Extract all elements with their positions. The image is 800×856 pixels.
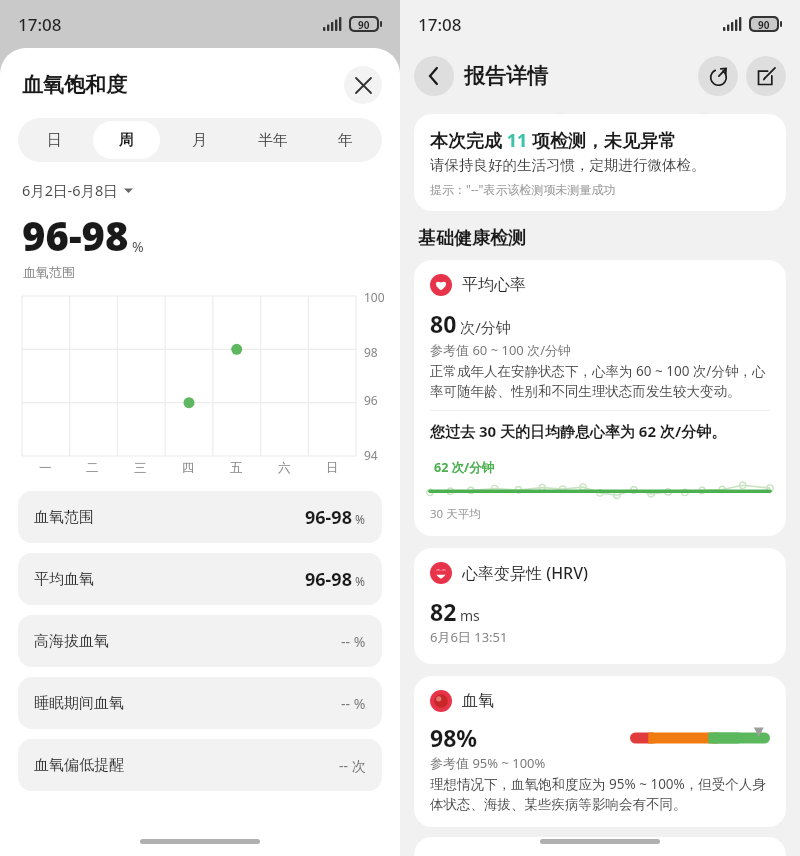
button[interactable]: 血氧偏低提醒 [18, 739, 382, 791]
button[interactable]: 血氧范围 [18, 491, 382, 543]
staticText: 五 [230, 460, 243, 476]
button[interactable]: 平均心率 [414, 260, 786, 536]
staticText: 98% [430, 722, 478, 753]
staticText: 周 [119, 131, 134, 150]
button[interactable]: 分享 [698, 56, 738, 96]
staticText: 90 [758, 18, 770, 30]
button[interactable]: 日 [21, 121, 87, 159]
staticText: 高海拔血氧 [34, 632, 109, 651]
staticText: 98 [364, 344, 378, 360]
staticText: 睡眠期间血氧 [34, 694, 124, 713]
staticText: 96-98 % [305, 567, 366, 592]
staticText: 80 次/分钟 [430, 308, 511, 339]
staticText: 理想情况下，血氧饱和度应为 95% ~ 100%，但受个人身体状态、海拔、某些疾… [430, 775, 770, 813]
staticText: 6月6日 13:51 [430, 628, 508, 646]
staticText: 90 [358, 18, 370, 30]
button[interactable]: 6月2日-6月8日 [22, 180, 133, 200]
button[interactable]: 周 [93, 121, 160, 159]
staticText: -- % [341, 632, 366, 651]
staticText: 三 [134, 460, 147, 476]
staticText: -- 次 [339, 756, 366, 775]
staticText: 血氧饱和度 [22, 72, 127, 98]
staticText: 您过去 30 天的日均静息心率为 62 次/分钟。 [430, 421, 727, 441]
staticText: 17:08 [418, 13, 462, 36]
staticText: 血氧范围 [23, 264, 75, 280]
staticText: 二 [86, 460, 99, 476]
button[interactable]: 返回 [414, 56, 454, 96]
button[interactable]: 年 [312, 121, 379, 159]
button[interactable]: 编辑 [746, 56, 786, 96]
staticText: 平均血氧 [34, 570, 94, 589]
staticText: 正常成年人在安静状态下，心率为 60 ~ 100 次/分钟，心率可随年龄、性别和… [430, 362, 770, 400]
staticText: 年 [338, 131, 353, 150]
staticText: 六 [278, 460, 291, 476]
staticText: 血氧范围 [34, 508, 94, 527]
button[interactable]: 心率变异性 (HRV) [414, 548, 786, 664]
staticText: 基础健康检测 [418, 227, 526, 250]
staticText: 100 [364, 289, 385, 305]
button[interactable]: 血氧 [414, 676, 786, 827]
staticText: 日 [326, 460, 339, 476]
staticText: 94 [364, 447, 378, 463]
staticText: 提示："--"表示该检测项未测量成功 [430, 181, 616, 197]
staticText: 一 [39, 460, 52, 476]
staticText: 半年 [258, 131, 288, 150]
staticText: 报告详情 [464, 63, 548, 89]
staticText: -- % [341, 694, 366, 713]
staticText: 请保持良好的生活习惯，定期进行微体检。 [430, 156, 706, 174]
staticText: 96 [364, 392, 378, 408]
staticText: 心率变异性 (HRV) [462, 562, 589, 584]
staticText: 日 [47, 131, 62, 150]
staticText: 平均心率 [462, 275, 526, 295]
staticText: 四 [182, 460, 195, 476]
button[interactable]: 高海拔血氧 [18, 615, 382, 667]
staticText: 参考值 60 ~ 100 次/分钟 [430, 341, 571, 359]
staticText: 参考值 95% ~ 100% [430, 754, 546, 772]
button[interactable]: 睡眠期间血氧 [18, 677, 382, 729]
staticText: 本次完成 11 项检测，未见异常 [430, 128, 676, 153]
staticText: 血氧偏低提醒 [34, 756, 124, 775]
button[interactable]: 平均血氧 [18, 553, 382, 605]
button[interactable]: 本次完成 11 项检测，未见异常 [414, 114, 786, 211]
staticText: 96-98 % [305, 505, 366, 530]
staticText: 6月2日-6月8日 [22, 180, 118, 200]
staticText: 30 天平均 [430, 506, 481, 522]
staticText: 血氧 [462, 691, 494, 711]
staticText: 月 [192, 131, 207, 150]
staticText: 82 ms [430, 596, 480, 627]
button[interactable]: 月 [166, 121, 233, 159]
staticText: 96-98 [22, 208, 129, 262]
button[interactable]: 关闭 [344, 66, 382, 104]
staticText: 17:08 [18, 13, 62, 36]
staticText: % [132, 237, 144, 256]
staticText: 62 次/分钟 [434, 459, 495, 476]
button[interactable]: 半年 [239, 121, 306, 159]
